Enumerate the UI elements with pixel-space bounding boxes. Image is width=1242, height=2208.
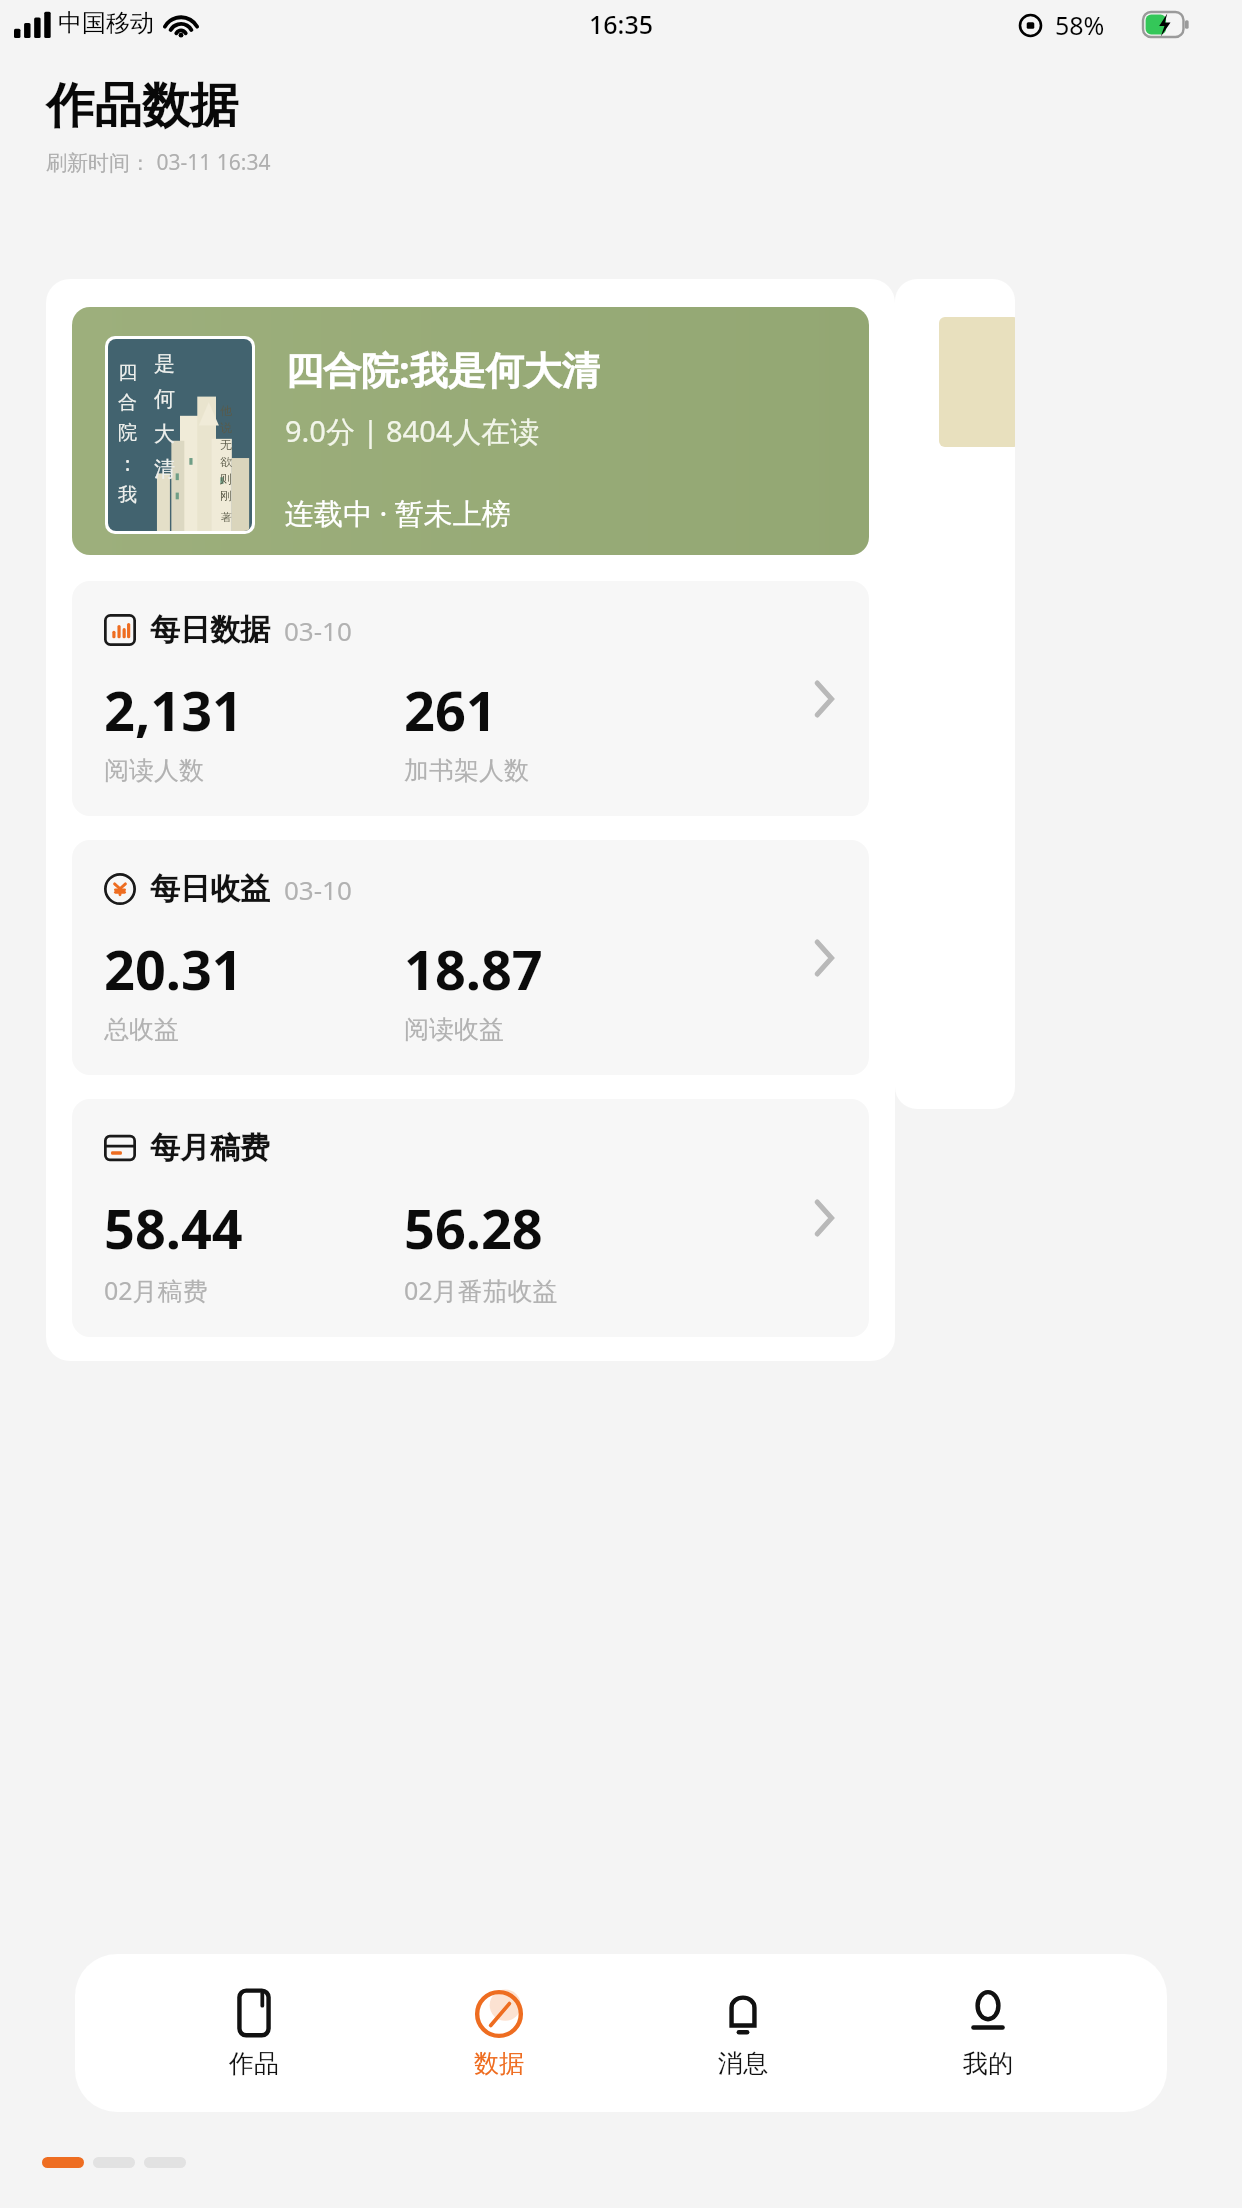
staticText: 每日数据 xyxy=(150,611,270,649)
button[interactable]: 每日收益 xyxy=(72,840,869,1075)
staticText: 加书架人数 xyxy=(404,755,529,786)
staticText: 中国移动 xyxy=(58,8,154,38)
button[interactable]: 我的 xyxy=(888,1954,1088,2112)
staticText: 总收益 xyxy=(104,1014,179,1045)
staticText: 58% xyxy=(1055,8,1105,42)
staticText: : xyxy=(125,451,131,477)
staticText: 清 xyxy=(154,456,175,482)
staticText: 则 xyxy=(220,471,232,486)
staticText: 刷新时间： 03-11 16:34 xyxy=(46,148,271,177)
button[interactable]: 每日数据 xyxy=(72,581,869,816)
staticText: 2,131 xyxy=(104,673,243,747)
staticText: 20.31 xyxy=(104,932,243,1006)
staticText: 02月番茄收益 xyxy=(404,1273,558,1307)
staticText: 他 xyxy=(220,403,232,418)
staticText: 阅读收益 xyxy=(404,1014,504,1045)
staticText: 院 xyxy=(118,421,137,445)
staticText: 作品数据 xyxy=(46,76,238,136)
staticText: 四 xyxy=(118,361,137,385)
button[interactable]: 数据 xyxy=(399,1954,599,2112)
staticText: 连载中 · 暂未上榜 xyxy=(285,493,511,533)
staticText: 是 xyxy=(154,351,175,377)
staticText: 03-10 xyxy=(284,872,352,907)
staticText: 58.44 xyxy=(104,1191,243,1265)
staticText: 著 xyxy=(221,510,232,524)
staticText: 说 xyxy=(220,420,232,435)
staticText: 无 xyxy=(220,437,232,452)
staticText: 56.28 xyxy=(404,1191,543,1265)
staticText: 18.87 xyxy=(404,932,543,1006)
staticText: 每月稿费 xyxy=(150,1129,270,1167)
staticText: 大 xyxy=(154,421,175,447)
staticText: 数据 xyxy=(474,2048,524,2079)
staticText: 16:35 xyxy=(589,7,654,41)
button[interactable]: 四 xyxy=(72,307,869,555)
staticText: 刚 xyxy=(220,488,232,503)
staticText: 03-10 xyxy=(284,613,352,648)
other: 查看详情 xyxy=(815,683,833,715)
button[interactable]: 消息 xyxy=(643,1954,843,2112)
staticText: 欲 xyxy=(220,454,232,469)
staticText: 消息 xyxy=(718,2048,768,2079)
staticText: 261 xyxy=(404,673,497,747)
staticText: 9.0分 | 8404人在读 xyxy=(285,411,540,451)
staticText: 合 xyxy=(118,391,137,415)
staticText: 我 xyxy=(118,483,137,507)
staticText: 每日收益 xyxy=(150,870,270,908)
staticText: 阅读人数 xyxy=(104,755,204,786)
staticText: 02月稿费 xyxy=(104,1273,208,1307)
staticText: 我的 xyxy=(963,2048,1013,2079)
button[interactable]: 作品 xyxy=(154,1954,354,2112)
button[interactable]: 每月稿费 xyxy=(72,1099,869,1337)
staticText: 四合院:我是何大清 xyxy=(285,343,600,395)
staticText: 作品 xyxy=(229,2048,279,2079)
other: 查看详情 xyxy=(815,942,833,974)
staticText: 何 xyxy=(154,386,175,412)
other: 查看详情 xyxy=(815,1202,833,1234)
